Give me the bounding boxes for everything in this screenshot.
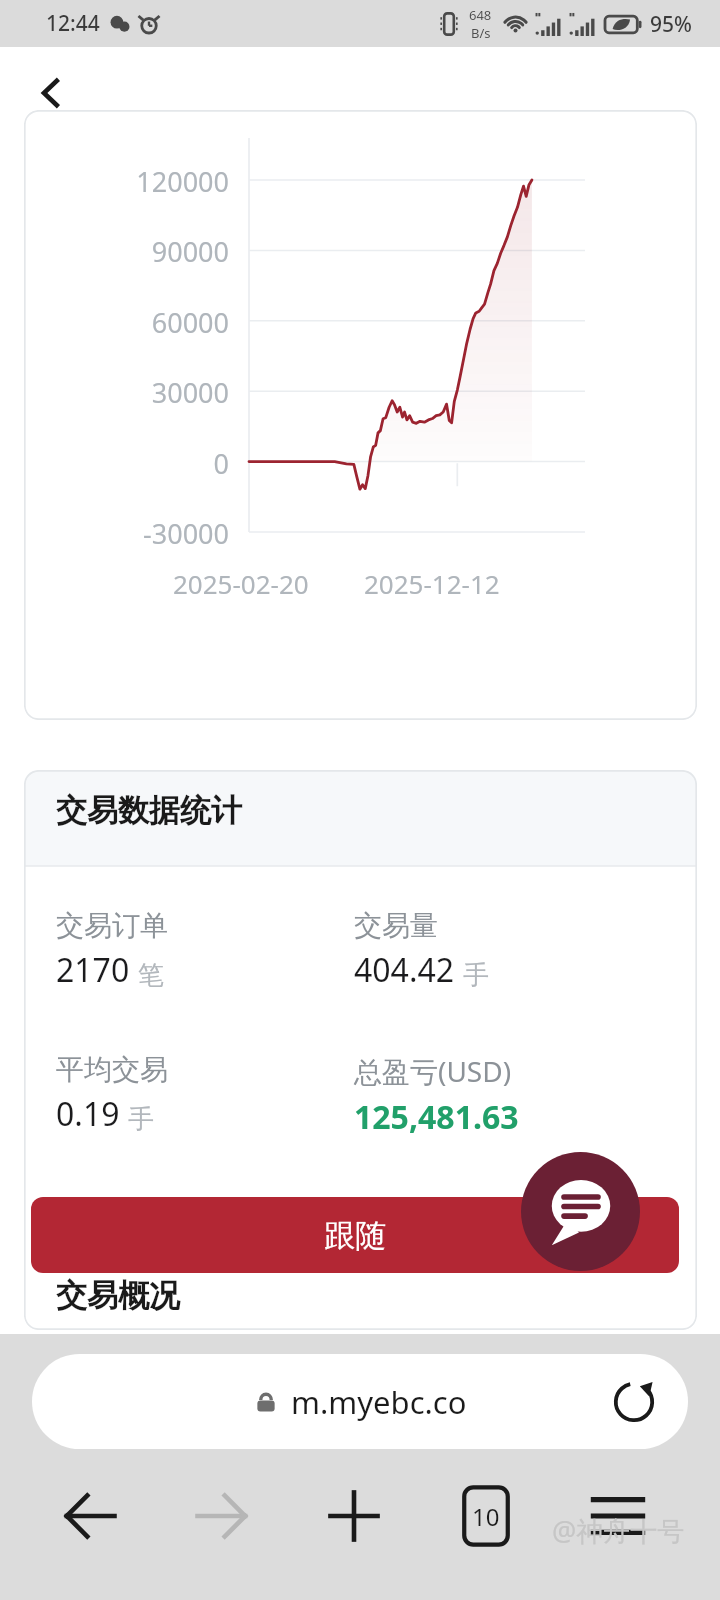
staticText: m.myebc.co <box>291 1381 467 1423</box>
staticText: 笔 <box>138 959 164 992</box>
button[interactable]: Forward <box>188 1482 256 1550</box>
staticText: 404.42 <box>354 948 455 992</box>
staticText: 30000 <box>24 374 229 411</box>
staticText: 交易订单 <box>56 908 168 943</box>
staticText: 60000 <box>24 304 229 341</box>
staticText: -30000 <box>24 515 229 552</box>
button[interactable]: 跟随 <box>31 1197 679 1273</box>
staticText: 2025-12-12 <box>364 566 500 601</box>
staticText: 2025-02-20 <box>173 566 309 601</box>
button[interactable]: 平均交易 <box>56 1052 168 1136</box>
staticText: 2170 <box>56 948 130 992</box>
staticText: 125,481.63 <box>354 1095 519 1139</box>
button[interactable]: 交易量 <box>354 908 489 992</box>
button[interactable]: Reload <box>608 1376 660 1428</box>
staticText: 交易量 <box>354 908 438 943</box>
staticText: 120000 <box>24 163 229 200</box>
staticText: 交易数据统计 <box>56 791 242 830</box>
button[interactable]: 交易订单 <box>56 908 168 992</box>
button[interactable]: Back <box>56 1482 124 1550</box>
staticText: 0.19 <box>56 1092 120 1136</box>
button[interactable]: 总盈亏(USD) <box>354 1052 519 1139</box>
staticText: 0 <box>24 445 229 482</box>
button[interactable]: Menu <box>584 1482 652 1550</box>
staticText: 手 <box>128 1103 154 1136</box>
staticText: 12:44 <box>46 9 100 38</box>
staticText: B/s <box>471 24 491 42</box>
button[interactable]: Tabs <box>452 1482 520 1550</box>
staticText: 交易概况 <box>56 1276 180 1315</box>
button[interactable]: m.myebc.co <box>32 1354 688 1449</box>
button[interactable]: Back <box>18 60 84 126</box>
staticText: @神舟十号 <box>552 1512 685 1549</box>
staticText: 总盈亏(USD) <box>354 1052 512 1090</box>
staticText: 648 <box>469 6 492 24</box>
staticText: 跟随 <box>324 1216 386 1255</box>
staticText: 平均交易 <box>56 1052 168 1087</box>
staticText: 10 <box>472 1500 500 1533</box>
staticText: 95% <box>650 10 692 39</box>
button[interactable]: New tab <box>320 1482 388 1550</box>
staticText: 90000 <box>24 233 229 270</box>
staticText: 手 <box>463 959 489 992</box>
button[interactable]: Chat <box>521 1152 640 1271</box>
